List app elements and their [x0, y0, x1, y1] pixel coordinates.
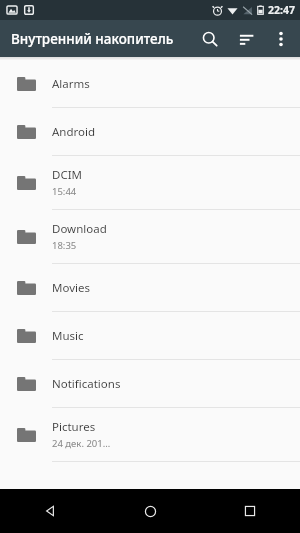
staticText: Music [52, 328, 84, 344]
button[interactable]: Notifications [0, 360, 300, 408]
staticText: Android [52, 124, 96, 140]
button[interactable]: Alarms [0, 60, 300, 108]
button[interactable]: Recent apps [200, 489, 300, 533]
button[interactable]: Download [0, 210, 300, 264]
button[interactable]: Back [0, 489, 100, 533]
staticText: DCIM [52, 167, 82, 183]
staticText: Movies [52, 280, 90, 296]
staticText: 15:44 [52, 185, 77, 198]
staticText: 18:35 [52, 239, 77, 252]
button[interactable]: DCIM [0, 156, 300, 210]
button[interactable]: More options [264, 22, 298, 56]
staticText: Notifications [52, 376, 121, 392]
staticText: Pictures [52, 419, 96, 435]
staticText: Download [52, 221, 107, 237]
staticText: Alarms [52, 76, 90, 92]
button[interactable]: Music [0, 312, 300, 360]
staticText: 24 дек. 201… [52, 437, 111, 450]
button[interactable]: Pictures [0, 408, 300, 462]
button[interactable]: Search [192, 21, 228, 57]
staticText: Внутренний накопитель [11, 30, 174, 48]
button[interactable]: Home [100, 489, 200, 533]
button[interactable]: Android [0, 108, 300, 156]
button[interactable]: Movies [0, 264, 300, 312]
button[interactable]: Sort [228, 21, 264, 57]
staticText: 22:47 [268, 3, 295, 17]
